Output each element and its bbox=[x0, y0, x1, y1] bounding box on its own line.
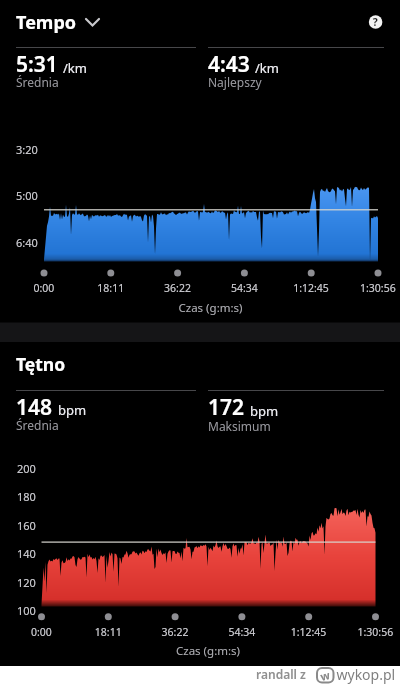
button[interactable] bbox=[248, 666, 398, 685]
button[interactable] bbox=[361, 7, 391, 37]
button[interactable] bbox=[12, 7, 108, 37]
